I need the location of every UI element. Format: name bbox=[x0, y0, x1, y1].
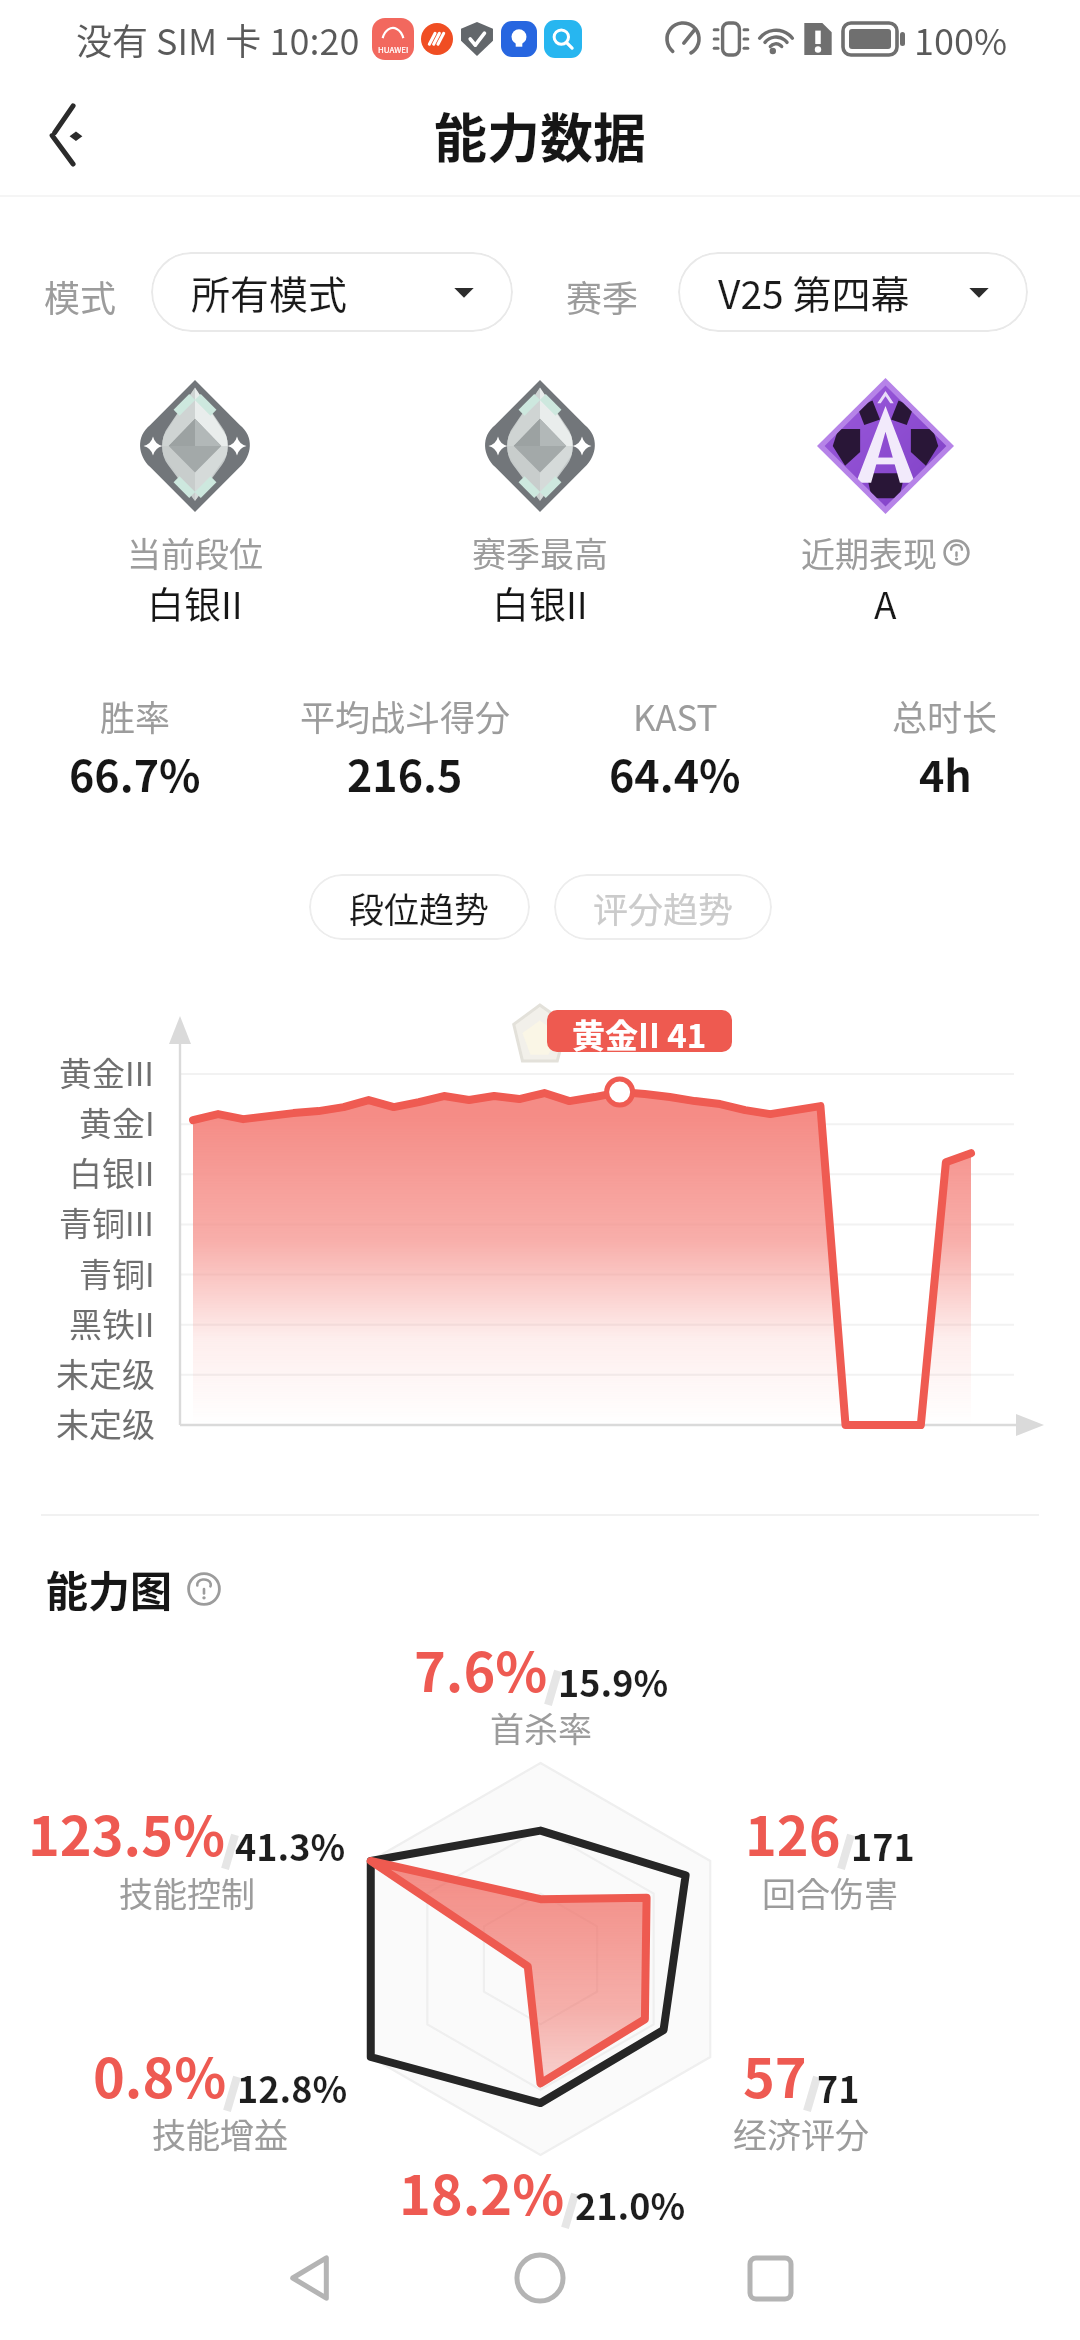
staticText: 回合伤害 bbox=[762, 1868, 898, 1917]
staticText: 白银II bbox=[147, 576, 243, 630]
staticText: 所有模式 bbox=[191, 264, 348, 320]
staticText: 41.3% bbox=[235, 1819, 346, 1871]
staticText: 100% bbox=[914, 13, 1008, 65]
staticText: 57 bbox=[743, 2035, 807, 2113]
button[interactable]: Help bbox=[187, 1572, 221, 1606]
button[interactable]: V25 第四幕 bbox=[678, 252, 1028, 332]
staticText: 技能控制 bbox=[119, 1868, 255, 1917]
staticText: 当前段位 bbox=[127, 528, 263, 577]
staticText: 71 bbox=[817, 2061, 860, 2113]
staticText: 15.9% bbox=[558, 1655, 669, 1707]
staticText: 64.4% bbox=[609, 742, 741, 804]
staticText: 7.6% bbox=[414, 1629, 548, 1707]
staticText: HUAWEI bbox=[378, 44, 409, 56]
staticText: V25 第四幕 bbox=[718, 264, 910, 320]
staticText: 首杀率 bbox=[490, 1703, 592, 1752]
staticText: 未定级 bbox=[56, 1399, 155, 1447]
staticText: 黄金I bbox=[79, 1098, 155, 1146]
staticText: 66.7% bbox=[69, 742, 201, 804]
staticText: 平均战斗得分 bbox=[300, 690, 511, 741]
staticText: 12.8% bbox=[237, 2061, 348, 2113]
button[interactable]: Home bbox=[490, 2228, 590, 2328]
button[interactable]: Back bbox=[260, 2228, 360, 2328]
staticText: 能力图 bbox=[46, 1558, 173, 1619]
staticText: 黄金II 41 bbox=[572, 1010, 707, 1052]
staticText: 段位趋势 bbox=[349, 882, 490, 933]
staticText: 技能增益 bbox=[152, 2109, 288, 2158]
staticText: 白银II bbox=[492, 576, 588, 630]
button[interactable]: 所有模式 bbox=[151, 252, 513, 332]
button[interactable]: Back bbox=[23, 91, 111, 179]
staticText: 126 bbox=[745, 1793, 841, 1871]
staticText: 216.5 bbox=[347, 742, 463, 804]
staticText: 18.2% bbox=[399, 2152, 565, 2230]
button[interactable]: 评分趋势 bbox=[554, 874, 772, 940]
staticText: 胜率 bbox=[100, 690, 171, 741]
button[interactable]: Recents bbox=[720, 2228, 820, 2328]
staticText: KAST bbox=[633, 690, 718, 741]
button[interactable]: Help bbox=[943, 539, 970, 566]
staticText: 总时长 bbox=[892, 690, 998, 741]
staticText: 模式 bbox=[44, 270, 117, 322]
staticText: 黄金III bbox=[59, 1048, 155, 1096]
staticText: 21.0% bbox=[575, 2178, 686, 2230]
staticText: 青铜III bbox=[59, 1198, 155, 1246]
staticText: 黑铁II bbox=[69, 1299, 155, 1347]
staticText: 赛季 bbox=[566, 270, 639, 322]
staticText: A bbox=[874, 576, 897, 630]
staticText: 4h bbox=[919, 742, 972, 804]
staticText: 171 bbox=[851, 1819, 915, 1871]
staticText: 经济评分 bbox=[733, 2109, 869, 2158]
staticText: 近期表现 bbox=[801, 528, 937, 577]
staticText: 0.8% bbox=[93, 2035, 227, 2113]
staticText: 123.5% bbox=[28, 1793, 225, 1871]
staticText: 评分趋势 bbox=[593, 882, 734, 933]
staticText: 赛季最高 bbox=[472, 528, 608, 577]
button[interactable]: 段位趋势 bbox=[309, 874, 530, 940]
staticText: 青铜I bbox=[79, 1249, 155, 1297]
staticText: 没有 SIM 卡 10:20 bbox=[76, 13, 360, 65]
staticText: 能力数据 bbox=[434, 97, 646, 174]
staticText: 白银II bbox=[69, 1148, 155, 1196]
staticText: 未定级 bbox=[56, 1349, 155, 1397]
